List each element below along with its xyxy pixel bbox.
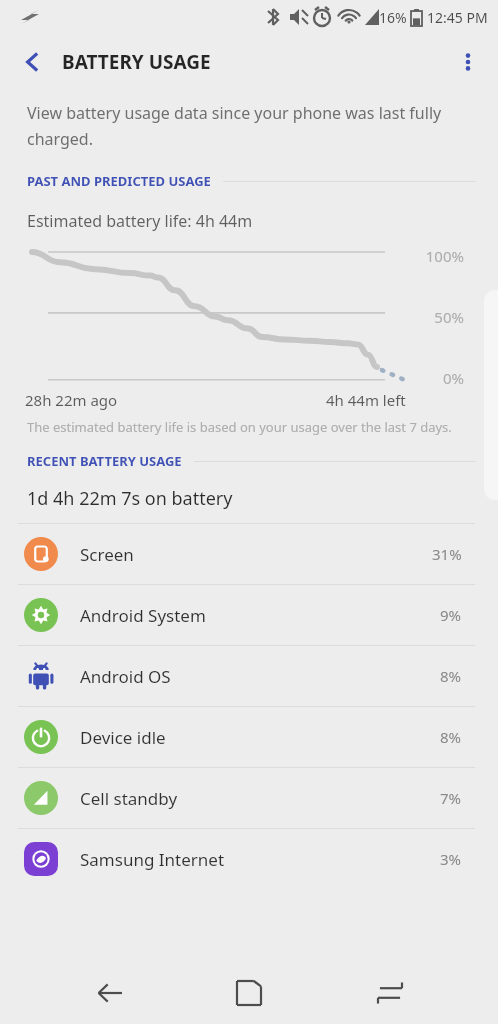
staticText: 7% (440, 788, 462, 808)
button[interactable]: Home (217, 962, 281, 1024)
button[interactable]: Cell standby (0, 768, 498, 828)
staticText: 8% (440, 666, 462, 686)
staticText: 16% (379, 8, 407, 27)
staticText: 0% (414, 368, 464, 386)
staticText: 100% (414, 246, 464, 264)
staticText: 50% (414, 307, 464, 325)
staticText: The estimated battery life is based on y… (27, 418, 452, 436)
staticText: Samsung Internet (80, 848, 225, 871)
button[interactable]: Screen (0, 524, 498, 584)
staticText: View battery usage data since your phone… (27, 102, 458, 150)
staticText: Screen (80, 543, 134, 566)
staticText: RECENT BATTERY USAGE (27, 452, 182, 470)
staticText: 8% (440, 727, 462, 747)
button[interactable]: Samsung Internet (0, 829, 498, 889)
staticText: 31% (432, 544, 462, 564)
staticText: Cell standby (80, 787, 178, 810)
staticText: BATTERY USAGE (62, 49, 211, 75)
staticText: 12:45 PM (427, 8, 488, 27)
staticText: 4h 44m left (326, 390, 406, 410)
staticText: 9% (440, 605, 462, 625)
button[interactable]: Android System (0, 585, 498, 645)
staticText: PAST AND PREDICTED USAGE (27, 172, 211, 190)
staticText: Android OS (80, 665, 171, 688)
staticText: 28h 22m ago (25, 390, 118, 410)
staticText: Device idle (80, 726, 166, 749)
button[interactable]: Device idle (0, 707, 498, 767)
button[interactable]: More options (446, 40, 490, 84)
staticText: Android System (80, 604, 206, 627)
button[interactable]: Back (77, 962, 141, 1024)
button[interactable]: Back (10, 40, 54, 84)
staticText: 1d 4h 22m 7s on battery (27, 486, 233, 511)
staticText: 3% (440, 849, 462, 869)
button[interactable]: Android OS (0, 646, 498, 706)
button[interactable]: Recent apps (358, 962, 422, 1024)
staticText: Estimated battery life: 4h 44m (27, 210, 253, 232)
